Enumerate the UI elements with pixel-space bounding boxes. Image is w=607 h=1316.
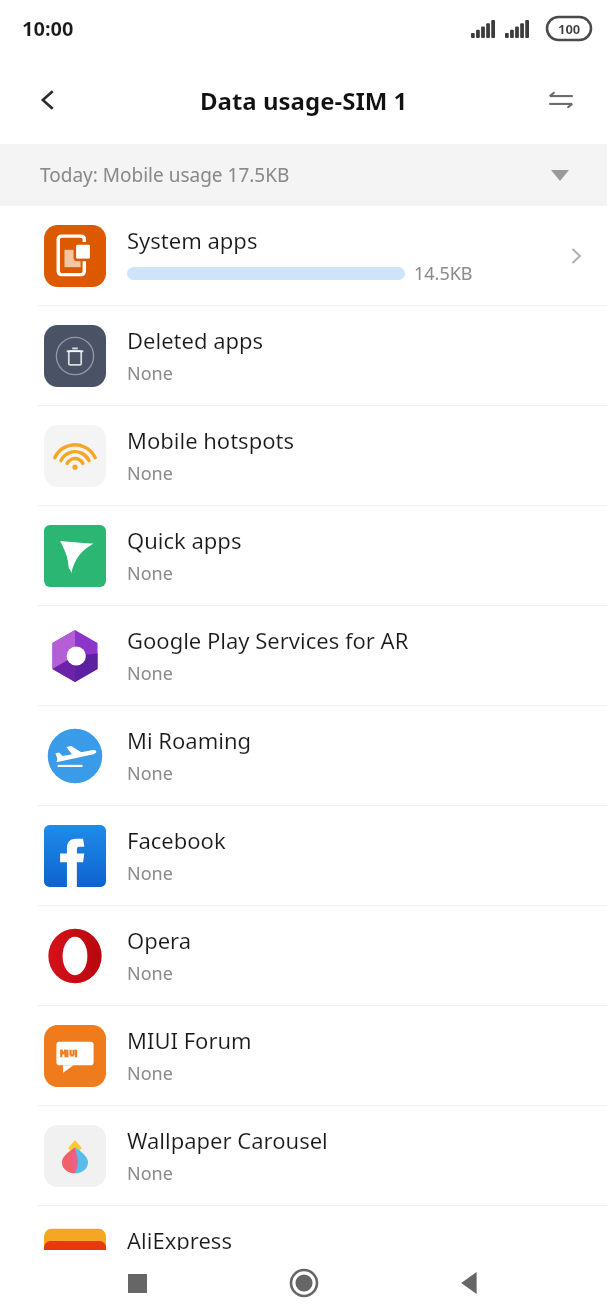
button[interactable]: Facebook: [0, 806, 607, 906]
button[interactable]: Back: [441, 1254, 499, 1312]
staticText: 14.5KB: [414, 261, 473, 286]
staticText: Quick apps: [127, 525, 242, 555]
staticText: None: [127, 661, 173, 686]
button[interactable]: Mobile hotspots: [0, 406, 607, 506]
staticText: None: [127, 561, 173, 586]
button[interactable]: Switch SIM: [533, 72, 589, 128]
staticText: AliExpress: [127, 1225, 232, 1255]
staticText: None: [127, 761, 173, 786]
button[interactable]: Deleted apps: [0, 306, 607, 406]
staticText: None: [127, 861, 173, 886]
button[interactable]: Google Play Services for AR: [0, 606, 607, 706]
staticText: System apps: [127, 225, 258, 255]
button[interactable]: Opera: [0, 906, 607, 1006]
staticText: None: [127, 1261, 173, 1286]
staticText: Today: Mobile usage 17.5KB: [40, 162, 290, 188]
staticText: 10:00: [22, 15, 74, 42]
staticText: Facebook: [127, 825, 226, 855]
staticText: Google Play Services for AR: [127, 625, 409, 655]
button[interactable]: System apps: [0, 206, 607, 306]
staticText: None: [127, 961, 173, 986]
staticText: Wallpaper Carousel: [127, 1125, 328, 1155]
staticText: MIUI Forum: [127, 1025, 252, 1055]
button[interactable]: Mi Roaming: [0, 706, 607, 806]
staticText: Mobile hotspots: [127, 425, 294, 455]
staticText: None: [127, 361, 173, 386]
staticText: Deleted apps: [127, 325, 264, 355]
button[interactable]: Recents: [108, 1254, 166, 1312]
staticText: Opera: [127, 925, 192, 955]
staticText: 100: [558, 20, 581, 38]
staticText: Data usage-SIM 1: [200, 84, 408, 117]
button[interactable]: Today: Mobile usage 17.5KB: [0, 144, 607, 206]
staticText: None: [127, 461, 173, 486]
staticText: Mi Roaming: [127, 725, 252, 755]
staticText: None: [127, 1061, 173, 1086]
button[interactable]: Quick apps: [0, 506, 607, 606]
button[interactable]: Wallpaper Carousel: [0, 1106, 607, 1206]
button[interactable]: Back: [18, 70, 78, 130]
button[interactable]: MIUI Forum: [0, 1006, 607, 1106]
button[interactable]: AliExpress: [0, 1206, 607, 1305]
staticText: None: [127, 1161, 173, 1186]
button[interactable]: Home: [275, 1254, 333, 1312]
